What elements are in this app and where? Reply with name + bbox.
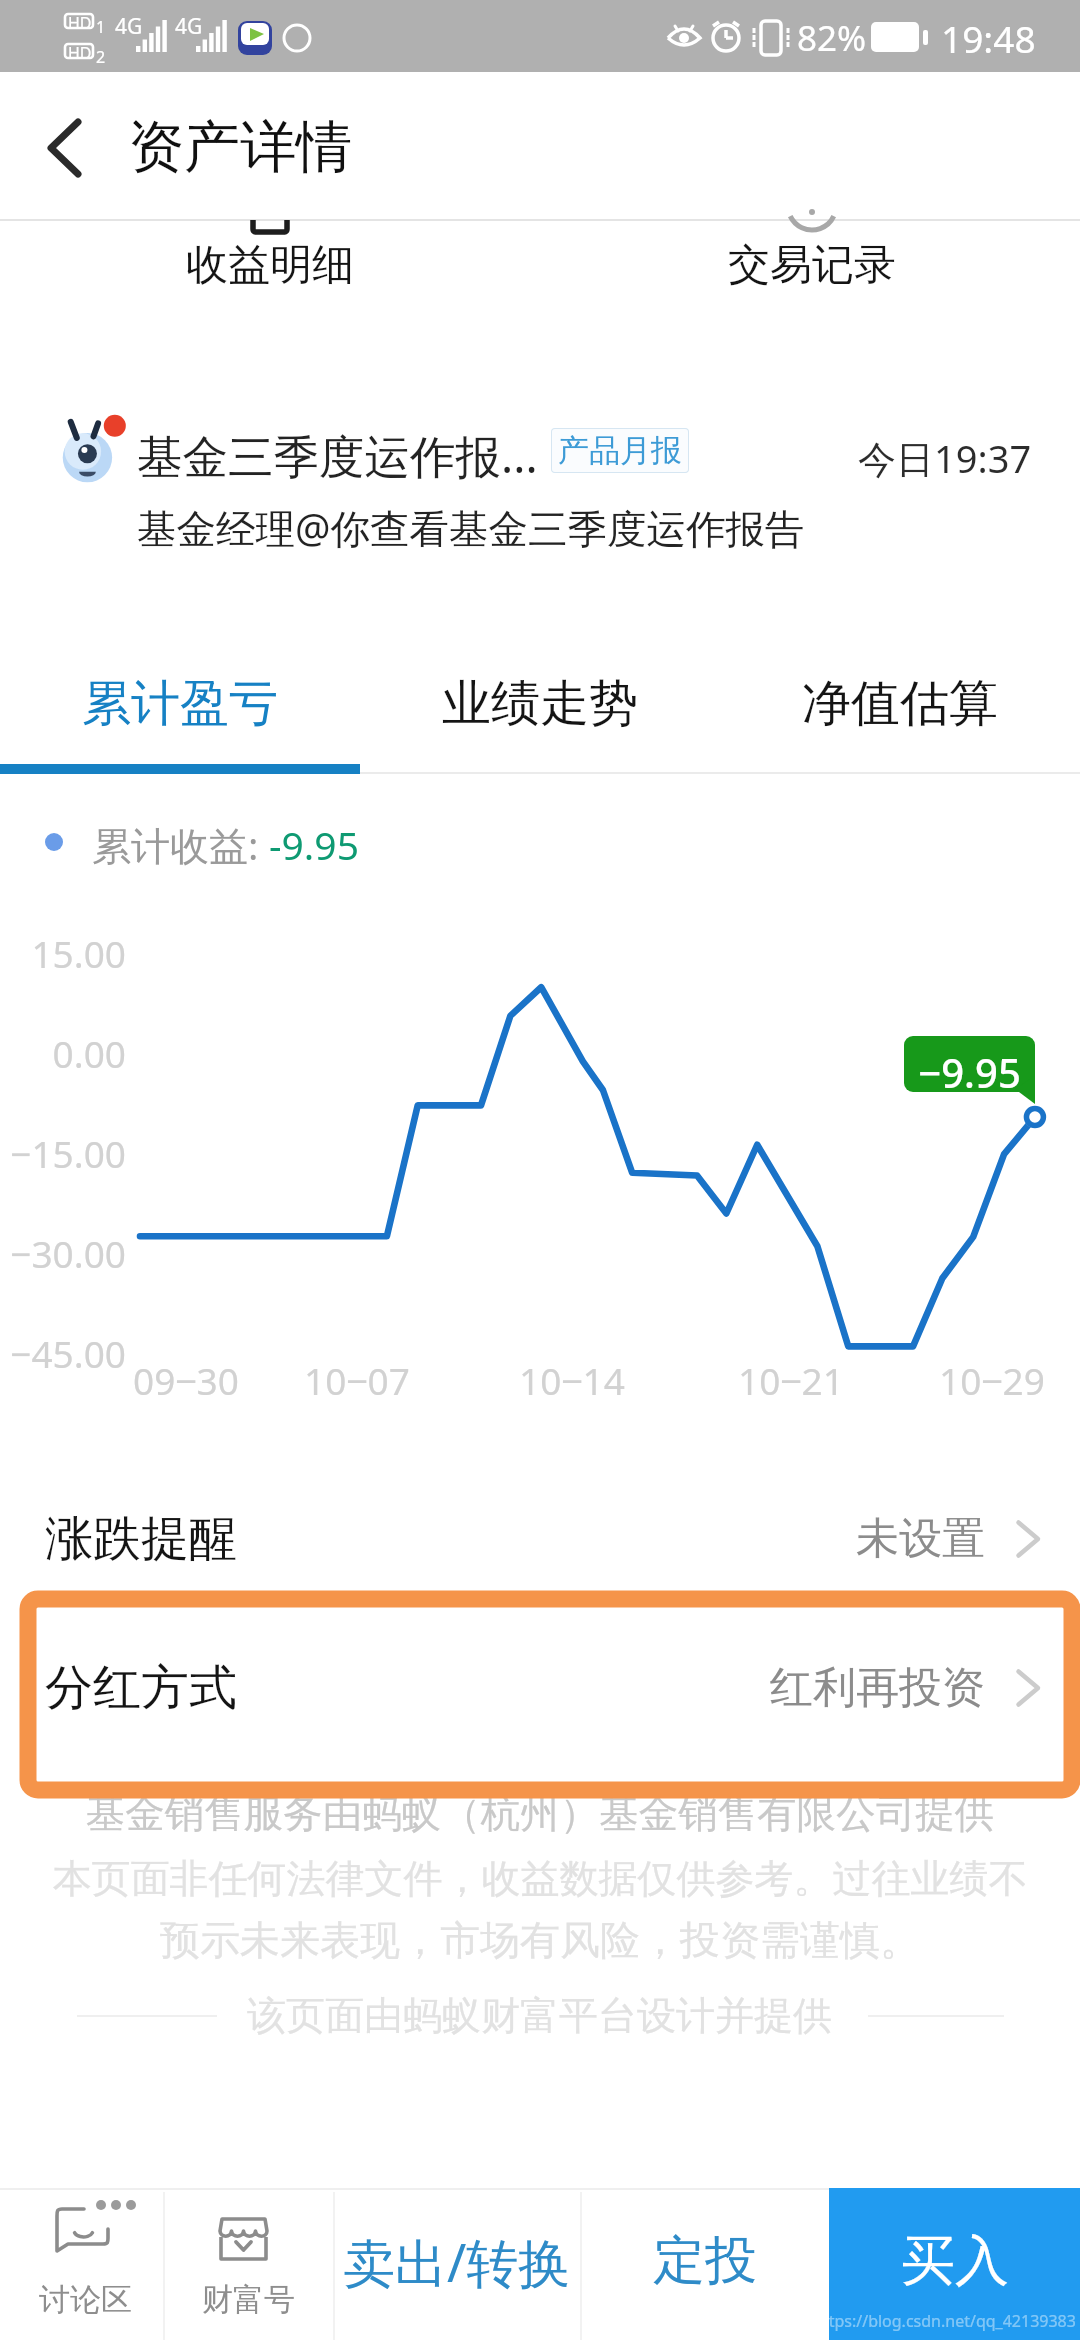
staticText: 10‒21 (731, 1355, 851, 1405)
button[interactable]: 净值估算 (720, 640, 1080, 774)
staticText: 1 (96, 16, 106, 38)
staticText: 10‒07 (297, 1355, 417, 1405)
staticText: 净值估算 (802, 673, 998, 735)
button[interactable]: 财富号 (165, 2188, 333, 2340)
staticText: HD (68, 42, 92, 64)
staticText: 今日19:37 (858, 432, 1032, 484)
staticText: 10‒29 (932, 1355, 1052, 1405)
button[interactable]: 买入 (829, 2188, 1080, 2340)
staticText: 该页面由蚂蚁财富平台设计并提供 (247, 1991, 832, 2040)
staticText: 卖出/转换 (343, 2226, 571, 2297)
staticText: 分红方式 (45, 1658, 237, 1718)
staticText: −15.00 (2, 1128, 126, 1178)
staticText: 收益明细 (186, 239, 354, 292)
button[interactable]: 分红方式 (0, 1613, 1080, 1763)
staticText: 09‒30 (126, 1355, 246, 1405)
staticText: 基金三季度运作报... (137, 424, 538, 486)
button[interactable]: 定投 (581, 2188, 829, 2340)
staticText: https://blog.csdn.net/qq_42139383 (813, 2310, 1080, 2332)
button[interactable]: 涨跌提醒 (0, 1464, 1080, 1614)
staticText: 本页面非任何法律文件，收益数据仅供参考。过往业绩不 (0, 1854, 1080, 1903)
staticText: 产品月报 (558, 431, 682, 470)
button[interactable]: 基金三季度运作报... (0, 380, 1080, 580)
staticText: 2 (96, 46, 106, 68)
staticText: 15.00 (2, 928, 126, 978)
staticText: −9.95 (904, 1045, 1035, 1099)
staticText: HD (68, 12, 92, 34)
staticText: 0.00 (2, 1028, 126, 1078)
staticText: 红利再投资 (770, 1661, 985, 1715)
staticText: 定投 (653, 2228, 757, 2294)
staticText: 累计收益: (92, 818, 269, 871)
button[interactable]: 讨论区 (0, 2188, 163, 2340)
staticText: -9.95 (269, 818, 359, 871)
staticText: 4G (115, 12, 143, 41)
staticText: 预示未来表现，市场有风险，投资需谨慎。 (0, 1915, 1080, 1965)
staticText: 未设置 (856, 1512, 985, 1566)
button[interactable]: 卖出/转换 (334, 2188, 580, 2340)
staticText: 资产详情 (128, 112, 352, 183)
button[interactable]: 累计盈亏 (0, 640, 360, 774)
button[interactable]: 交易记录 (692, 221, 932, 326)
staticText: 基金销售服务由蚂蚁（杭州）基金销售有限公司提供 (0, 1789, 1080, 1839)
staticText: 业绩走势 (442, 673, 638, 735)
staticText: 19:48 (941, 13, 1036, 63)
staticText: 财富号 (202, 2280, 295, 2319)
staticText: −45.00 (2, 1328, 126, 1378)
button[interactable]: 业绩走势 (360, 640, 720, 774)
staticText: 基金经理@你查看基金三季度运作报告 (137, 501, 805, 555)
button[interactable]: Back (20, 104, 108, 192)
staticText: 买入 (901, 2227, 1009, 2295)
staticText: 涨跌提醒 (45, 1509, 237, 1569)
staticText: 82% (797, 14, 867, 62)
button[interactable]: 收益明细 (150, 221, 390, 326)
staticText: 10‒14 (512, 1355, 632, 1405)
staticText: 交易记录 (728, 239, 896, 292)
staticText: 讨论区 (39, 2280, 132, 2319)
staticText: 累计盈亏 (82, 673, 278, 735)
staticText: −30.00 (2, 1228, 126, 1278)
staticText: 4G (175, 12, 203, 41)
